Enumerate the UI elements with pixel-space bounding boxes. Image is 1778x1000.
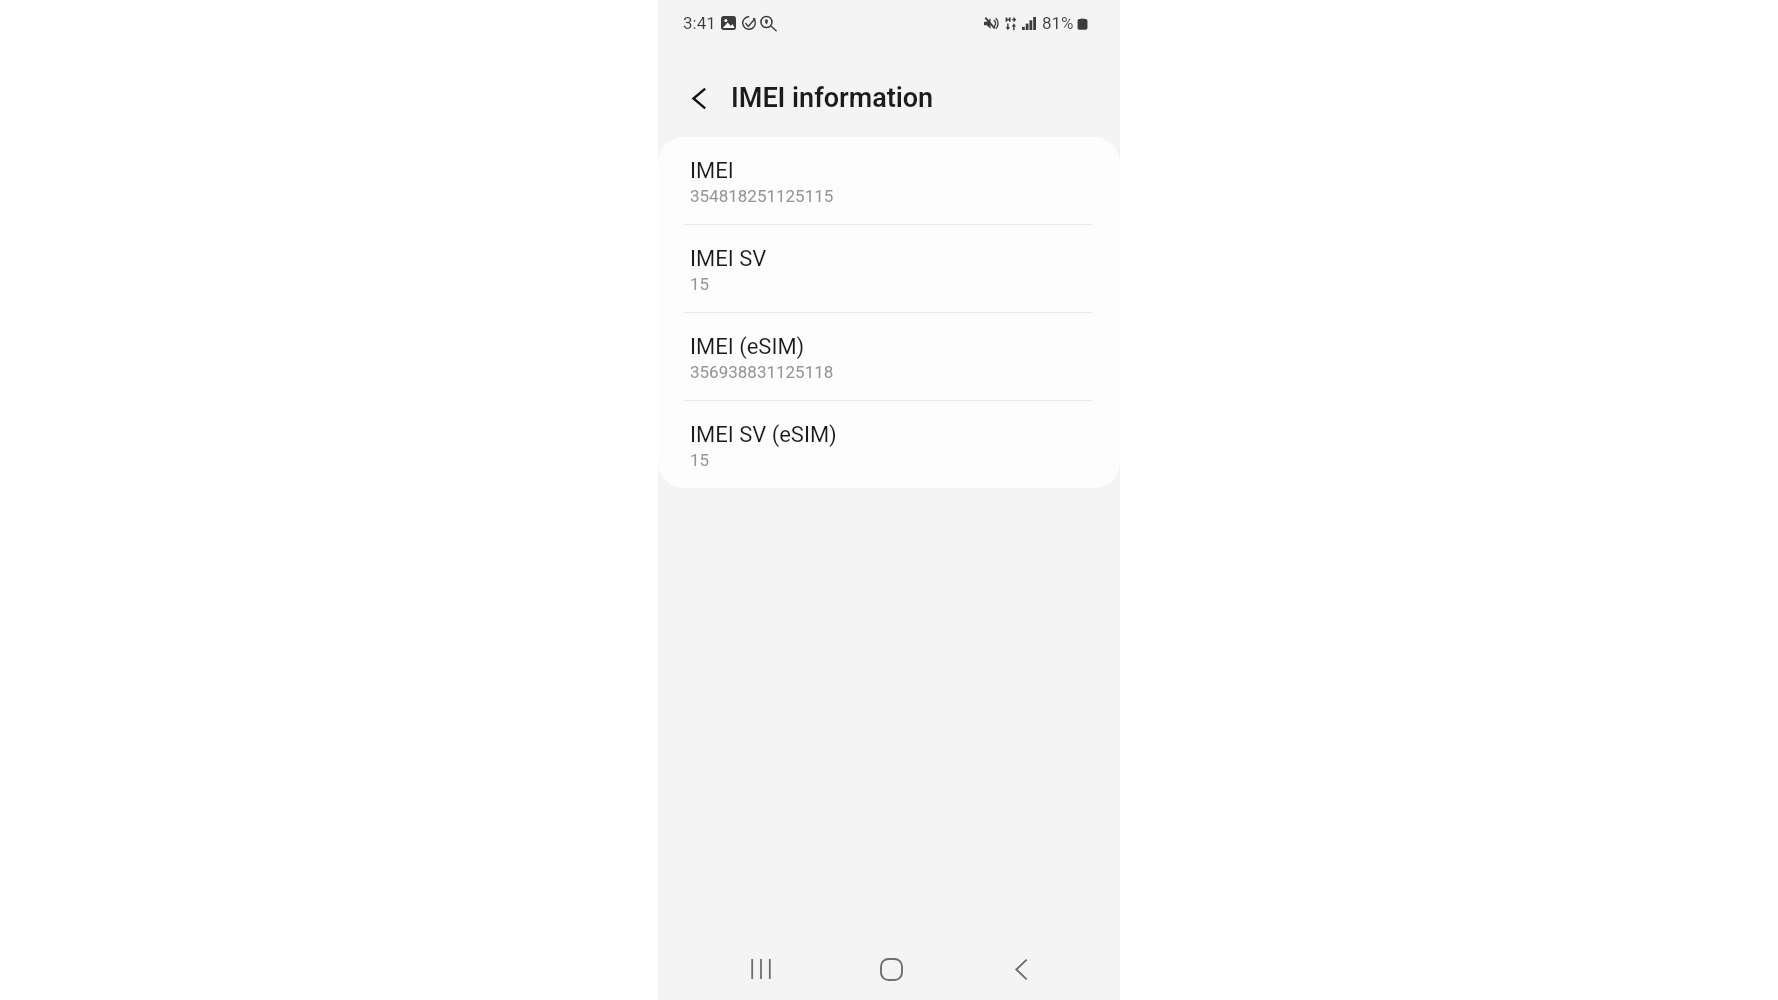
staticText: IMEI (eSIM) [690, 334, 805, 360]
staticText: 81% [1042, 13, 1074, 33]
button[interactable]: Recent apps [725, 938, 797, 1000]
staticText: 3:41 [683, 13, 716, 33]
staticText: IMEI SV (eSIM) [690, 422, 837, 448]
button[interactable]: Navigate up [680, 79, 718, 117]
staticText: IMEI [690, 158, 734, 184]
button[interactable]: IMEI SV (eSIM) [658, 401, 1120, 488]
staticText: 15 [690, 274, 710, 294]
button[interactable]: Back [985, 938, 1057, 1000]
button[interactable]: IMEI (eSIM) [658, 313, 1120, 400]
staticText: 15 [690, 450, 710, 470]
button[interactable]: Home [855, 938, 927, 1000]
staticText: 354818251125115 [690, 186, 834, 206]
button[interactable]: IMEI SV [658, 225, 1120, 312]
staticText: IMEI information [731, 82, 934, 114]
button[interactable]: IMEI [658, 137, 1120, 224]
staticText: 356938831125118 [690, 362, 834, 382]
staticText: IMEI SV [690, 246, 767, 272]
